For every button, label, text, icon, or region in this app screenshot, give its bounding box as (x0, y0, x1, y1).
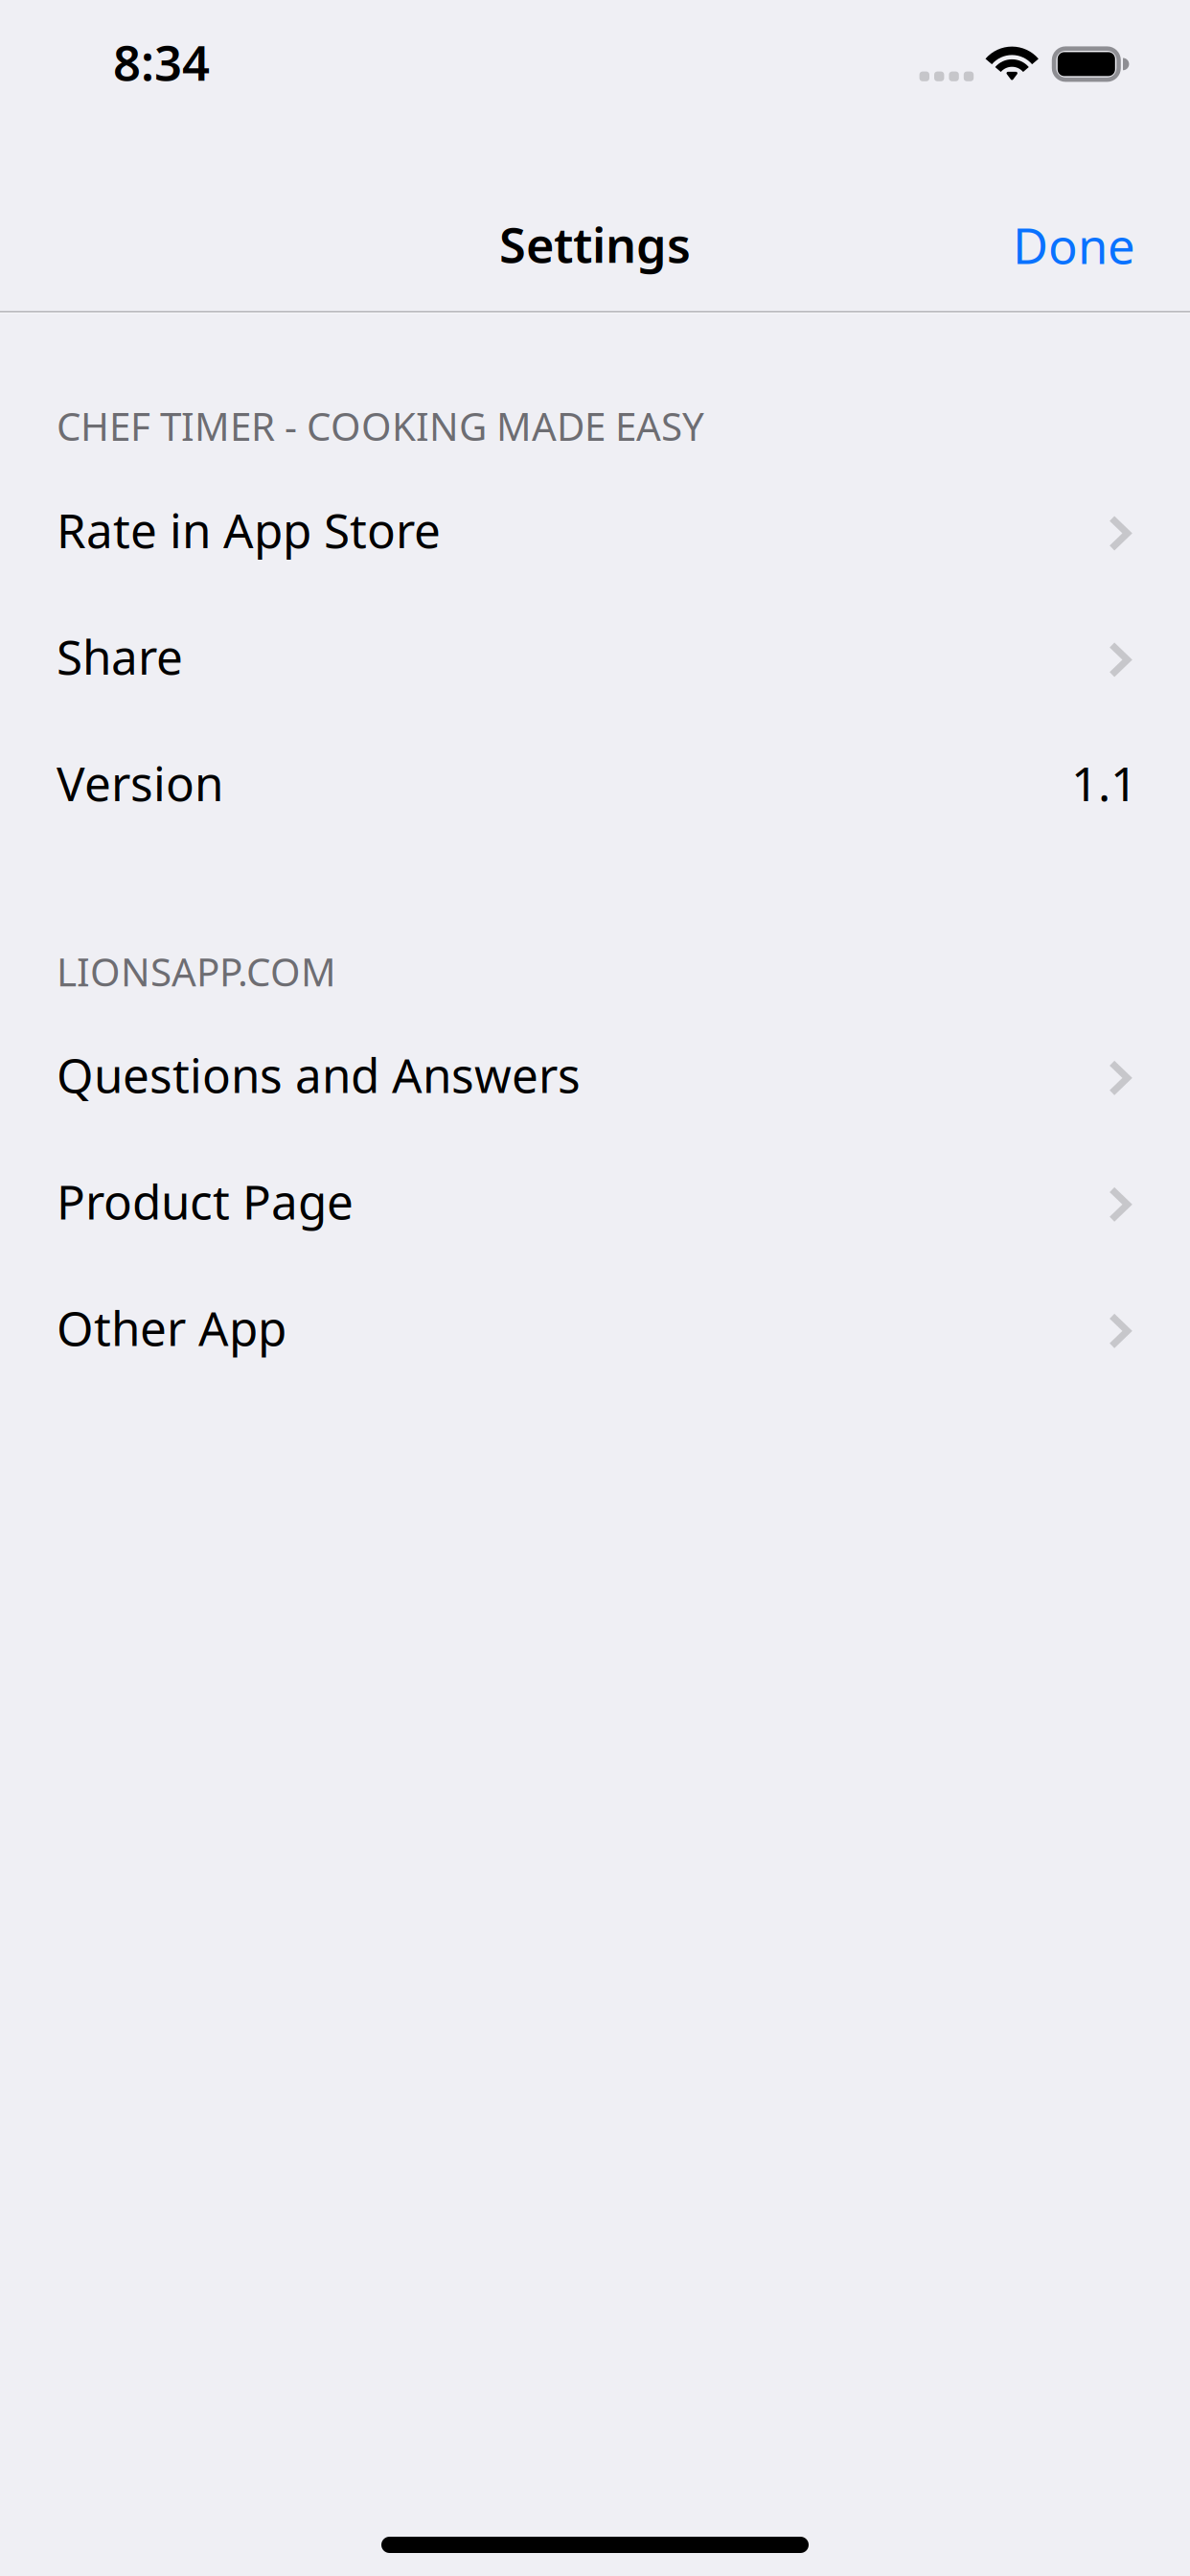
staticText: 1.1 (1071, 752, 1137, 814)
staticText: Rate in App Store (57, 499, 441, 561)
staticText: Settings (499, 212, 691, 276)
staticText: 8:34 (113, 30, 210, 94)
button[interactable]: Product Page (0, 1138, 1190, 1264)
staticText: CHEF TIMER - COOKING MADE EASY (57, 400, 704, 452)
staticText: Questions and Answers (57, 1043, 581, 1106)
staticText: Product Page (57, 1170, 354, 1233)
button[interactable]: Rate in App Store (0, 467, 1190, 593)
button[interactable]: Share (0, 593, 1190, 720)
button[interactable]: Done (988, 182, 1156, 308)
staticText: LIONSAPP.COM (57, 946, 336, 997)
button[interactable]: Questions and Answers (0, 1011, 1190, 1138)
staticText: Version (57, 752, 223, 814)
button[interactable]: Other App (0, 1264, 1190, 1391)
staticText: Other App (57, 1296, 286, 1359)
staticText: Done (1013, 213, 1135, 277)
staticText: Share (57, 625, 183, 688)
